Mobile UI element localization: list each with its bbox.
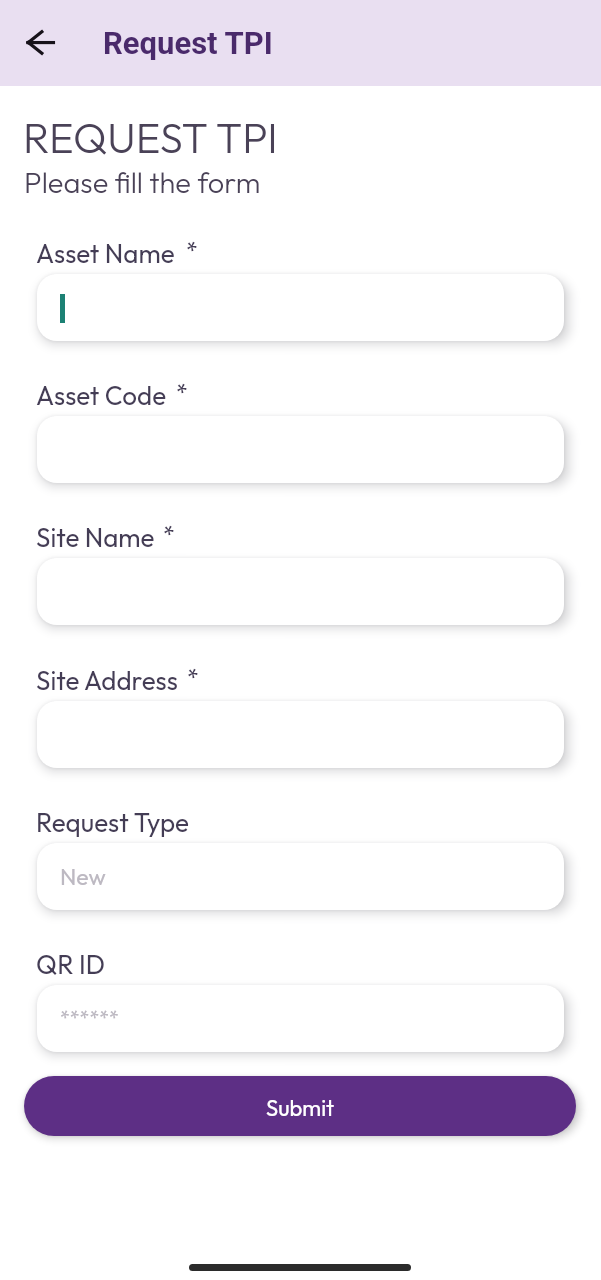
button[interactable] [37,985,564,1052]
staticText: Request TPI [103,25,273,61]
staticText: Submit [266,1094,335,1122]
staticText: * [186,236,198,266]
staticText: Site Address [36,664,178,697]
staticText: * [176,378,188,408]
button[interactable]: Back [18,21,62,65]
staticText: New [60,862,106,891]
staticText: QR ID [36,948,105,981]
staticText: * [187,663,199,693]
staticText: Request Type [36,806,189,839]
staticText: * [163,520,175,550]
button[interactable] [37,274,564,341]
staticText: ****** [60,1005,119,1030]
staticText: Asset Code [36,379,167,412]
staticText: Site Name [36,521,155,554]
staticText: Asset Name [36,237,175,270]
staticText: REQUEST TPI [23,111,278,164]
button[interactable]: Submit [24,1076,576,1136]
staticText: Please fill the form [24,164,261,201]
button[interactable] [37,843,564,910]
